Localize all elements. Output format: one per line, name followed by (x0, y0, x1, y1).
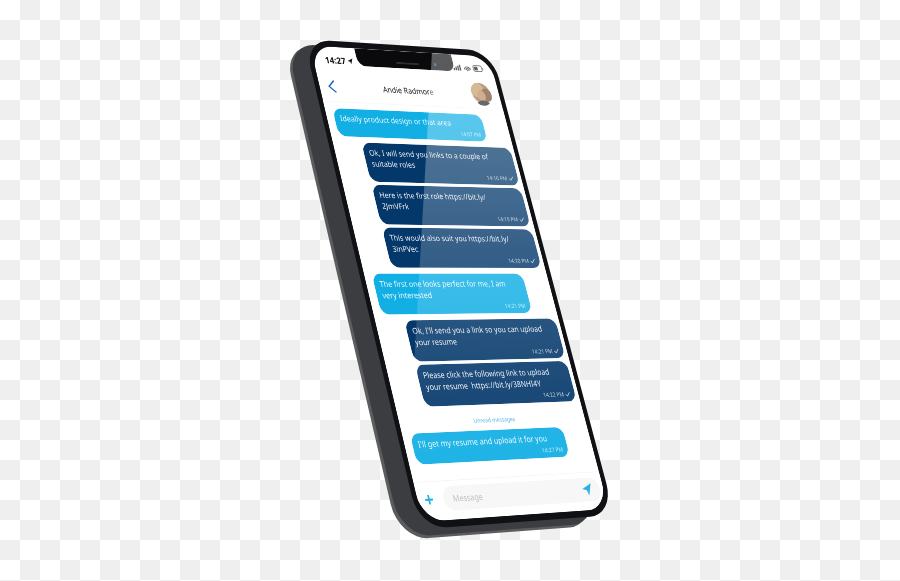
staticText: Here is the first role https://bit.ly/ 2… (136, 513, 573, 581)
button[interactable]: Profile (628, 103, 716, 191)
button[interactable]: Ideally product design or that area (30, 226, 646, 327)
button[interactable]: Here is the first role https://bit.ly/ 2… (114, 497, 736, 581)
button[interactable]: Back (14, 111, 86, 183)
staticText: Andie Radmore (256, 128, 467, 167)
staticText: 14:16 PM (601, 448, 688, 475)
staticText: 14:07 PM (537, 288, 624, 315)
staticText: Ideally product design or that area (52, 242, 507, 280)
button[interactable]: Ok, I will send you links to a couple of… (114, 347, 736, 487)
staticText: Ok, I will send you links to a couple of… (136, 363, 629, 440)
staticText: 14:27 (48, 28, 131, 72)
